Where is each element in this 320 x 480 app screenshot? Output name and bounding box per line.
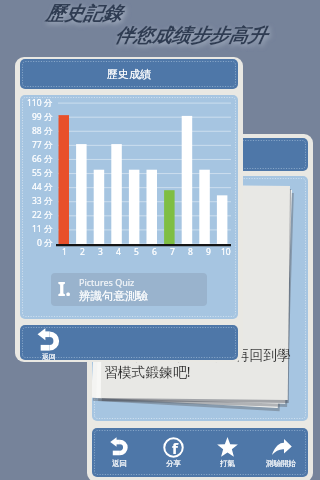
- staticText: 歷史記錄: [45, 2, 121, 26]
- staticText: 來吧!完成了測驗之後,再回到學 習模式鍛鍊吧!: [104, 345, 300, 381]
- staticText: 6: [152, 246, 157, 258]
- staticText: 66 分: [32, 153, 53, 165]
- staticText: 歷史成績: [107, 67, 151, 81]
- staticText: 返回: [112, 459, 127, 468]
- staticText: 88 分: [32, 125, 53, 137]
- staticText: 22 分: [32, 209, 53, 221]
- staticText: f: [172, 438, 178, 458]
- staticText: 77 分: [32, 139, 53, 151]
- staticText: 9: [206, 246, 211, 258]
- staticText: Pictures Quiz: [79, 276, 135, 288]
- staticText: I.: [58, 276, 71, 302]
- staticText: 8: [188, 246, 193, 258]
- button[interactable]: 測驗開始: [254, 428, 308, 477]
- staticText: 33 分: [32, 195, 53, 207]
- staticText: 1: [62, 246, 67, 258]
- staticText: 打氣: [220, 459, 235, 468]
- button[interactable]: 返回: [20, 325, 238, 360]
- staticText: 99 分: [32, 111, 53, 123]
- staticText: 測驗開始: [266, 459, 296, 468]
- staticText: 辨識句意測驗: [79, 289, 148, 303]
- staticText: 10: [221, 246, 231, 258]
- staticText: 55 分: [32, 167, 53, 179]
- staticText: 0 分: [37, 237, 53, 249]
- button[interactable]: I.: [51, 273, 207, 306]
- staticText: 44 分: [32, 181, 53, 193]
- staticText: 11 分: [32, 223, 53, 235]
- staticText: 4: [116, 246, 121, 258]
- staticText: 伴您成绩步步高升: [114, 24, 266, 48]
- staticText: 2: [80, 246, 85, 258]
- staticText: 3: [98, 246, 103, 258]
- staticText: 5: [134, 246, 139, 258]
- button[interactable]: 分享: [146, 428, 200, 477]
- staticText: 7: [170, 246, 175, 258]
- button[interactable]: 打氣: [200, 428, 254, 477]
- staticText: 返回: [42, 352, 56, 360]
- staticText: 110 分: [27, 97, 53, 109]
- staticText: 分享: [166, 459, 181, 468]
- button[interactable]: 返回: [92, 428, 146, 477]
